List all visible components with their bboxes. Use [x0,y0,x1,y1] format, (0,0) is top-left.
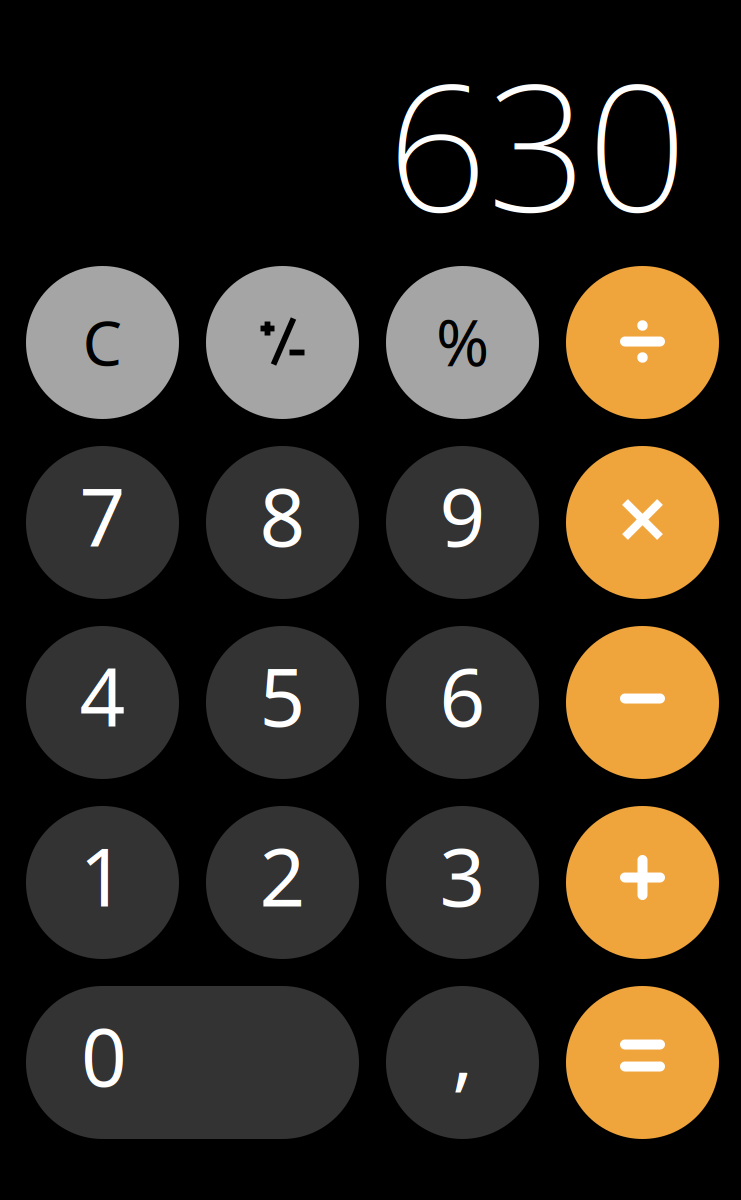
staticText: 3 [439,822,485,929]
button[interactable]: 9 [386,446,539,599]
staticText: 2 [259,822,305,929]
button[interactable]: Plus [566,806,719,959]
button[interactable]: 0 [26,986,359,1139]
button[interactable]: 4 [26,626,179,779]
button[interactable]: , [386,986,539,1139]
button[interactable]: Minus [566,626,719,779]
button[interactable]: 5 [206,626,359,779]
staticText: 9 [439,462,485,569]
button[interactable]: Multiply [566,446,719,599]
staticText: 6 [439,642,485,749]
staticText: 0 [81,1002,127,1109]
button[interactable]: 1 [26,806,179,959]
staticText: 8 [259,462,305,569]
staticText: 1 [79,822,125,929]
staticText: , [452,998,473,1105]
button[interactable]: 8 [206,446,359,599]
button[interactable]: % [386,266,539,419]
button[interactable]: 3 [386,806,539,959]
button[interactable]: Divide [566,266,719,419]
staticText: % [436,299,489,384]
staticText: 5 [259,642,305,749]
button[interactable]: 7 [26,446,179,599]
button[interactable]: Equals [566,986,719,1139]
staticText: 630 [387,26,687,260]
button[interactable]: 2 [206,806,359,959]
staticText: 4 [79,642,125,749]
button[interactable]: C [26,266,179,419]
staticText: C [82,300,122,383]
staticText: 7 [79,462,125,569]
button[interactable]: 6 [386,626,539,779]
button[interactable]: Plus minus [206,266,359,419]
